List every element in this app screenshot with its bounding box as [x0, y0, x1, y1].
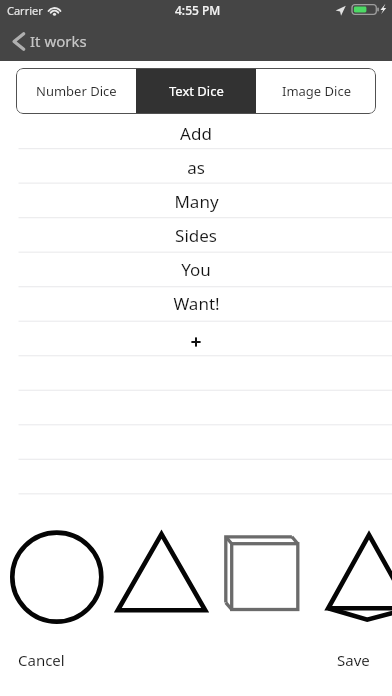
button[interactable]: Save — [315, 640, 392, 680]
staticText: You — [181, 258, 211, 281]
staticText: Text Dice — [169, 82, 224, 100]
staticText: Image Dice — [282, 82, 351, 100]
button[interactable]: Cancel — [0, 640, 83, 680]
staticText: It works — [30, 31, 87, 51]
button[interactable] — [0, 459, 392, 494]
staticText: Cancel — [18, 650, 65, 670]
button[interactable]: You — [0, 250, 392, 284]
staticText: Carrier — [7, 3, 43, 18]
staticText: Save — [337, 650, 370, 670]
button[interactable]: Want! — [0, 284, 392, 319]
staticText: Many — [174, 190, 219, 213]
button[interactable] — [0, 319, 392, 354]
staticText: as — [187, 156, 205, 179]
button[interactable]: Back — [0, 26, 101, 56]
button[interactable]: Image Dice — [256, 68, 376, 114]
button[interactable]: as — [0, 148, 392, 182]
button[interactable]: Text Dice — [136, 68, 256, 114]
button[interactable]: Add — [0, 114, 392, 148]
staticText: 4:55 PM — [175, 2, 221, 18]
staticText: Want! — [173, 292, 220, 315]
button[interactable]: Number Dice — [16, 68, 136, 114]
button[interactable]: Many — [0, 182, 392, 216]
staticText: Add — [180, 122, 212, 145]
other: Back — [12, 32, 25, 51]
button[interactable]: Sides — [0, 216, 392, 250]
staticText: Number Dice — [36, 82, 117, 100]
staticText: Sides — [175, 224, 217, 247]
